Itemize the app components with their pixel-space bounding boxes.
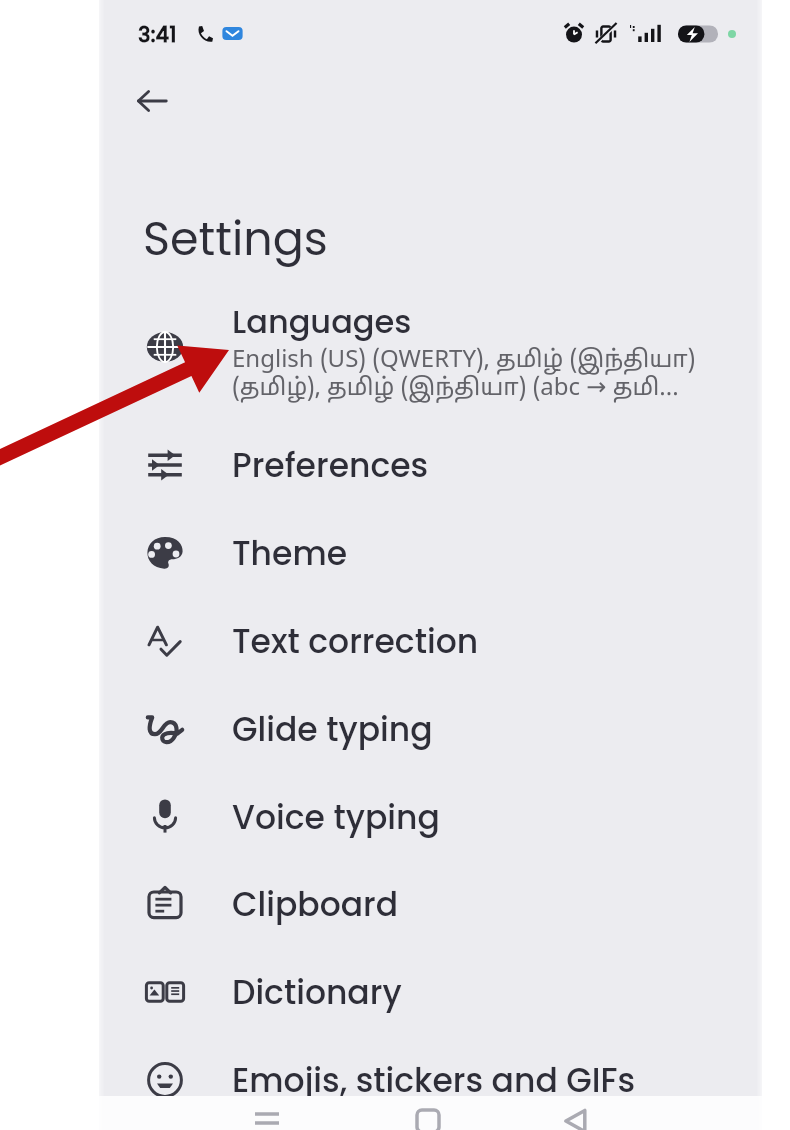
button[interactable]: Dictionary [99, 948, 762, 1036]
button[interactable]: Home [408, 1104, 448, 1130]
staticText: Languages [232, 299, 412, 344]
button[interactable]: Text correction [99, 597, 762, 685]
staticText: Voice typing [232, 794, 440, 840]
staticText: Emojis, stickers and GIFs [232, 1057, 636, 1103]
button[interactable]: Glide typing [99, 685, 762, 773]
button[interactable]: Clipboard [99, 860, 762, 948]
staticText: Settings [143, 207, 328, 271]
staticText: Preferences [232, 442, 429, 488]
button[interactable]: Voice typing [99, 773, 762, 861]
staticText: Text correction [232, 618, 479, 664]
button[interactable]: Back [126, 75, 178, 127]
staticText: English (US) (QWERTY), தமிழ் (இந்தியா) (… [232, 341, 732, 404]
staticText: 3:41 [138, 20, 177, 49]
button[interactable]: Theme [99, 509, 762, 597]
button[interactable]: Preferences [99, 421, 762, 509]
button[interactable]: Recent apps [247, 1104, 287, 1130]
button[interactable]: Back [556, 1104, 596, 1130]
button[interactable]: Languages [99, 303, 762, 423]
staticText: Clipboard [232, 881, 399, 927]
staticText: Theme [232, 530, 348, 576]
staticText: Glide typing [232, 706, 433, 752]
staticText: Dictionary [232, 969, 402, 1015]
button[interactable]: Emojis, stickers and GIFs [99, 1036, 762, 1124]
